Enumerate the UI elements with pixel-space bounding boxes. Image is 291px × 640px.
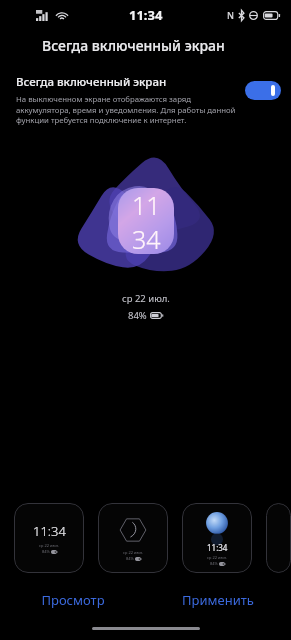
staticText: 84% [210,561,218,566]
staticText: ср 22 июл. [122,292,170,305]
button[interactable]: Digital clock style [14,503,84,573]
button[interactable]: Moon style [182,503,252,573]
staticText: 84% [42,549,50,554]
staticText: 11:34 [33,522,66,540]
staticText: ср 22 июл. [207,555,228,560]
staticText: Всегда включенный экран [42,36,225,55]
staticText: N [227,9,234,21]
button[interactable]: Toggle always-on display [245,81,281,100]
button[interactable]: More styles [266,503,291,573]
staticText: Просмотр [41,591,105,609]
staticText: На выключенном экране отображаются заряд… [16,94,237,126]
staticText: 84% [128,309,147,322]
staticText: 11:34 [207,542,228,553]
staticText: 84% [126,556,134,561]
staticText: Применить [182,591,254,609]
staticText: ср 22 июл. [123,550,144,555]
staticText: 11 [132,188,161,222]
staticText: ср 22 июл. [39,543,60,548]
staticText: 34 [132,222,161,254]
button[interactable]: Hexagon style [98,503,168,573]
staticText: Всегда включенный экран [16,74,167,90]
staticText: 11:34 [129,6,163,24]
button[interactable]: Просмотр [0,583,145,617]
button[interactable]: Применить [145,583,291,617]
